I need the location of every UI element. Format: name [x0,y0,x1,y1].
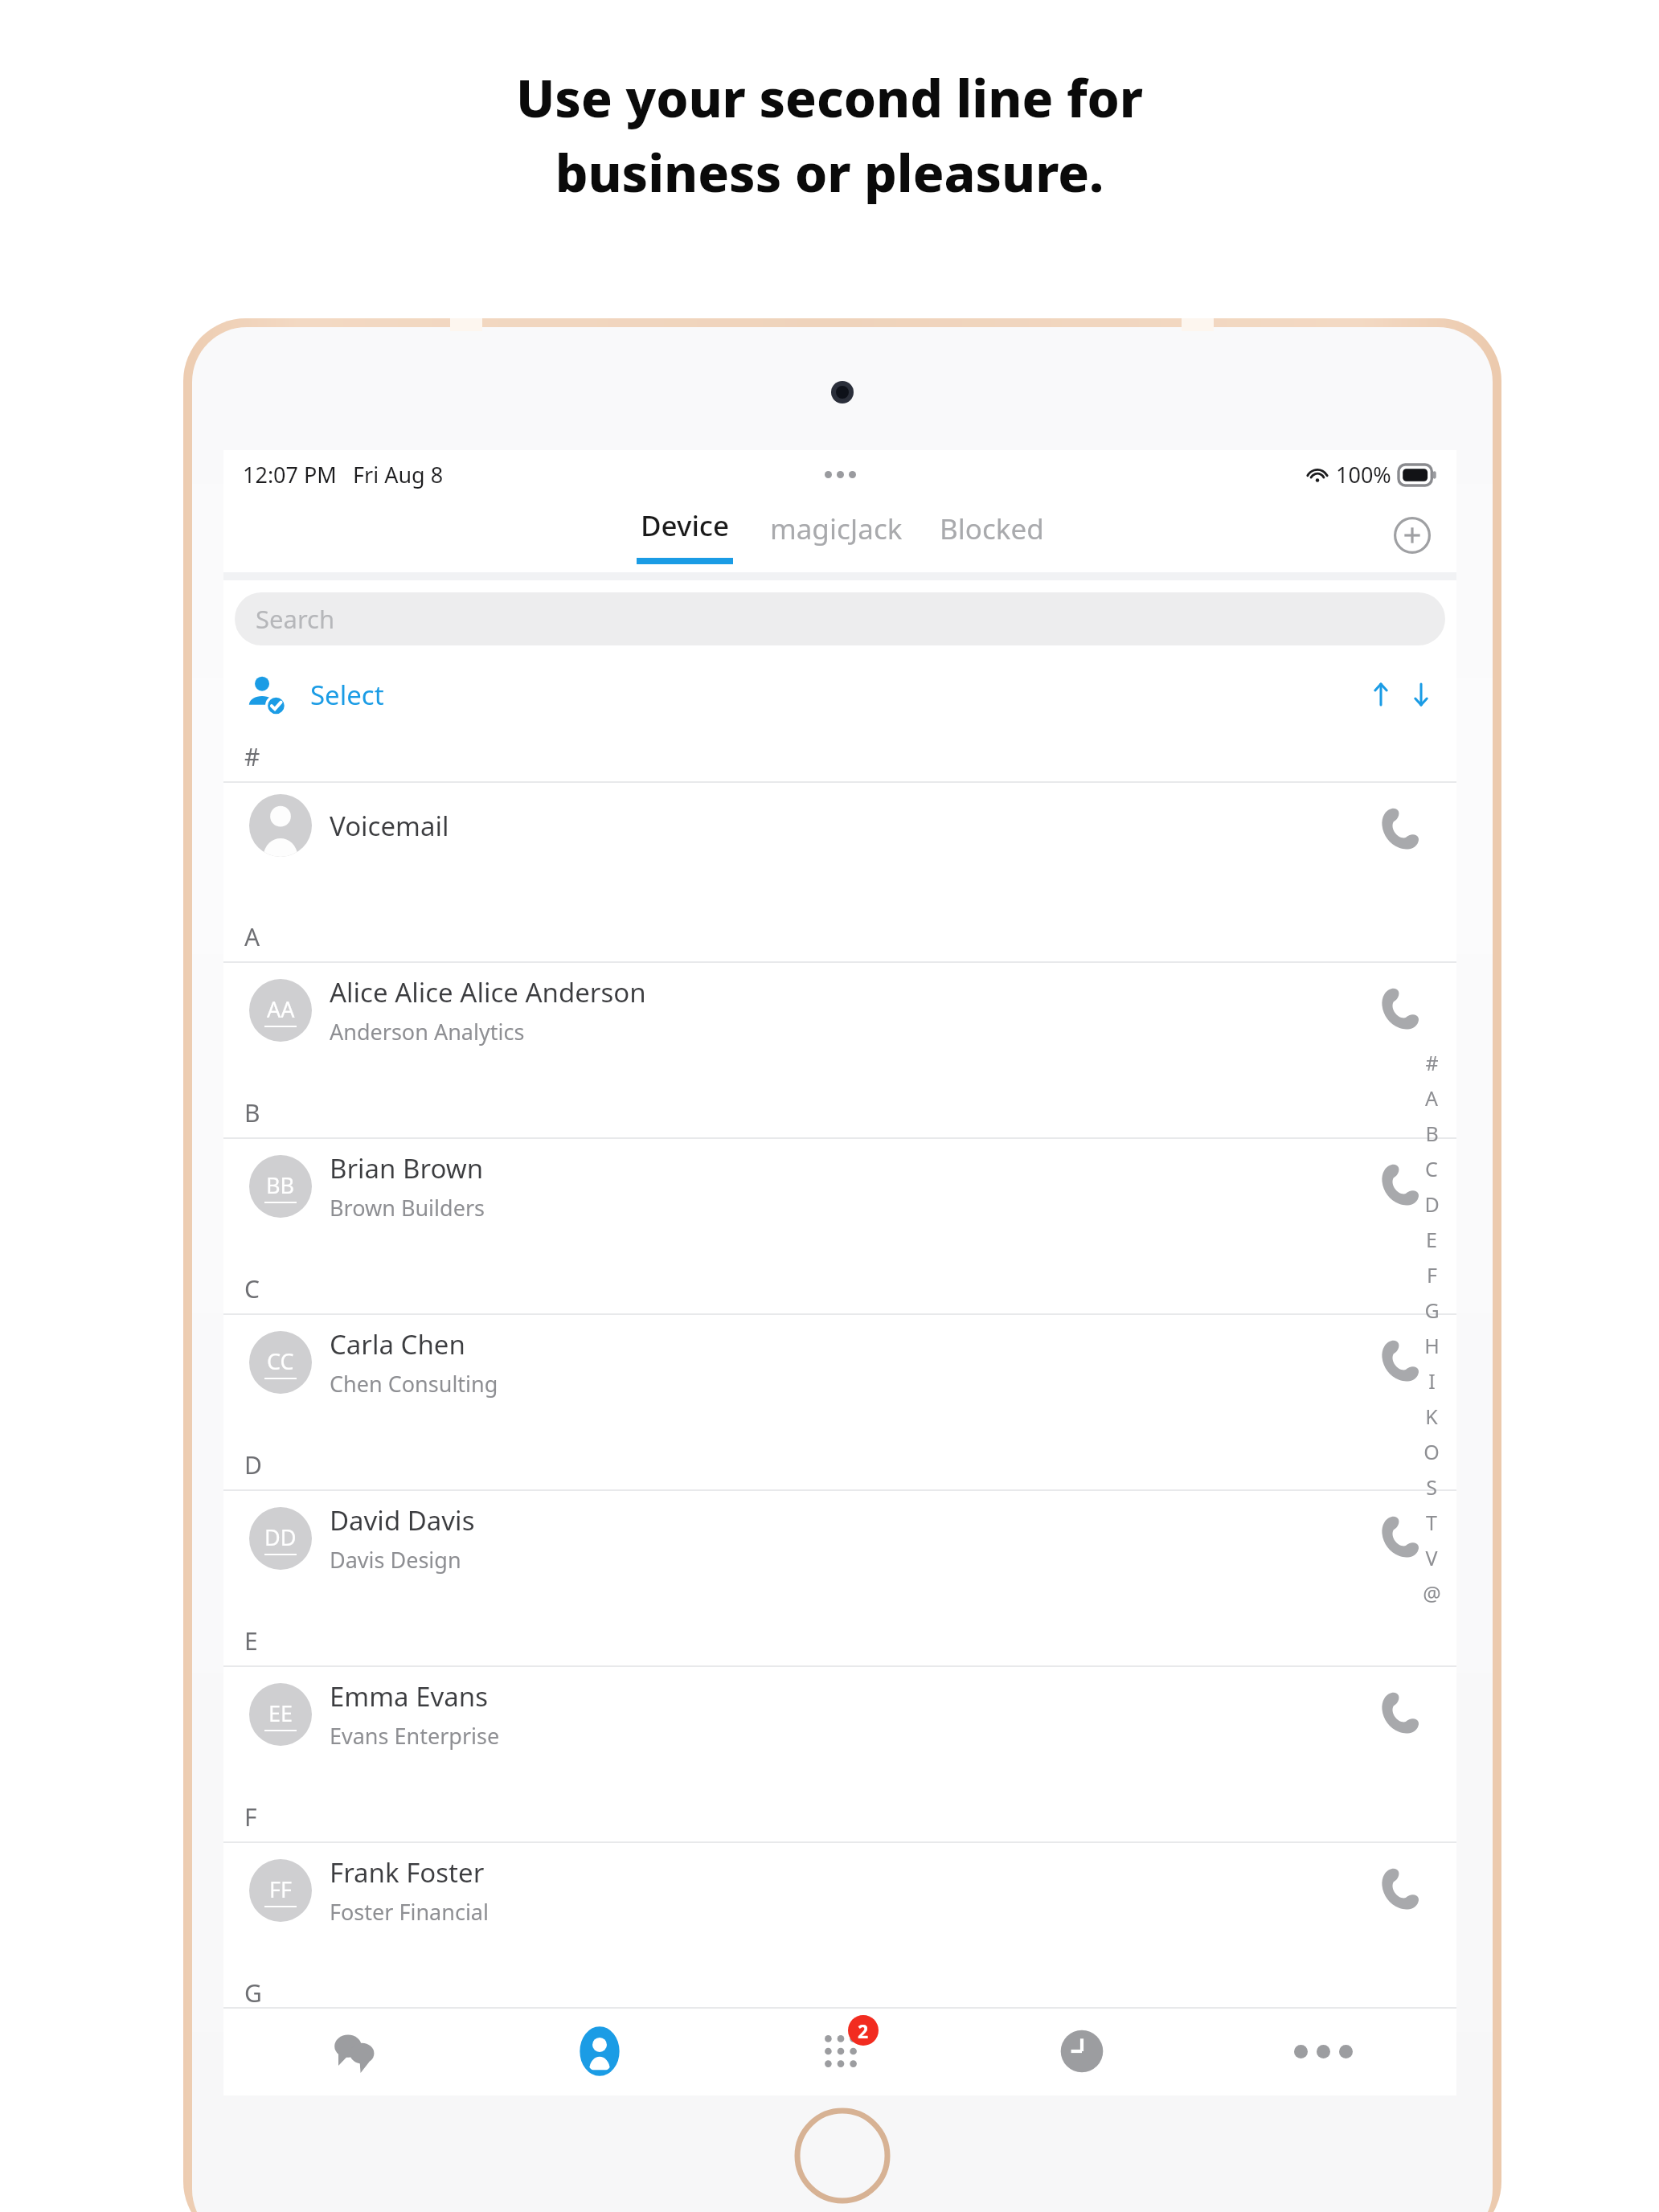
staticText: FF [269,1874,293,1904]
staticText: Frank Foster [330,1854,485,1890]
button[interactable]: DD [223,1491,1456,1616]
staticText: @ [1423,1579,1441,1607]
staticText: Alice Alice Alice Anderson [330,974,646,1010]
staticText: O [1423,1438,1440,1465]
button[interactable]: Messages [236,2007,478,2095]
staticText: D [1424,1190,1440,1218]
button[interactable]: Alphabet index [1411,1045,1452,1611]
staticText: BB [266,1170,295,1200]
button[interactable]: FF [223,1843,1456,1968]
staticText: DD [264,1522,297,1552]
staticText: G [1424,1296,1440,1324]
staticText: C [1425,1155,1438,1182]
staticText: B [1425,1120,1439,1147]
button[interactable]: Blocked [935,503,1049,567]
staticText: C [244,1272,260,1305]
staticText: K [1425,1403,1438,1430]
staticText: A [244,920,260,953]
button[interactable]: Keypad [720,2007,961,2095]
staticText: Brown Builders [330,1193,485,1223]
staticText: business or pleasure. [0,137,1659,207]
staticText: Anderson Analytics [330,1017,525,1047]
button[interactable]: Device [632,500,738,571]
staticText: Select [310,677,384,713]
staticText: # [1425,1049,1439,1076]
button[interactable]: Add contact [1386,509,1439,562]
button[interactable]: Recents [961,2007,1202,2095]
staticText: B [244,1096,260,1129]
button[interactable]: Search [235,592,1445,645]
staticText: Use your second line for [0,63,1659,133]
staticText: F [1427,1261,1437,1288]
button[interactable]: BB [223,1139,1456,1264]
staticText: Foster Financial [330,1897,489,1927]
staticText: 2 [858,2018,869,2043]
staticText: E [1426,1226,1437,1253]
staticText: T [1426,1509,1437,1536]
staticText: Voicemail [330,808,449,844]
staticText: 100% [1336,460,1391,490]
staticText: V [1425,1544,1438,1571]
staticText: CC [267,1346,294,1376]
button[interactable]: Call Voicemail [1376,804,1426,854]
staticText: magicJack [770,510,903,548]
staticText: E [244,1624,258,1657]
staticText: AA [267,994,295,1024]
button[interactable]: Voicemail [223,783,1456,911]
button[interactable]: AA [223,963,1456,1088]
staticText: Carla Chen [330,1326,465,1362]
button[interactable]: GG [223,2019,1456,2095]
button[interactable]: Call Alice Alice Alice Anderson [1376,984,1426,1034]
staticText: S [1426,1473,1437,1501]
staticText: David Davis [330,1502,475,1538]
staticText: I [1428,1367,1436,1395]
staticText: H [1424,1332,1440,1359]
staticText: George Grant [330,2030,500,2067]
staticText: Fri Aug 8 [353,460,444,490]
staticText: Emma Evans [330,1678,488,1714]
staticText: A [1425,1084,1438,1112]
staticText: EE [268,1698,293,1728]
staticText: Device [641,506,730,545]
button[interactable]: Call Carla Chen [1376,1336,1426,1386]
button[interactable]: Call Emma Evans [1376,1688,1426,1738]
button[interactable]: Select [244,671,384,718]
staticText: # [244,740,260,773]
button[interactable]: Contacts [478,2007,720,2095]
staticText: F [244,1800,257,1833]
button[interactable]: Call Brian Brown [1376,1160,1426,1210]
staticText: Search [256,602,335,636]
staticText: D [244,1448,262,1481]
button[interactable]: magicJack [765,503,907,567]
staticText: G [244,1976,262,2009]
button[interactable]: EE [223,1667,1456,1792]
button[interactable]: Call David Davis [1376,1512,1426,1562]
staticText: 12:07 PM [243,460,337,490]
staticText: Brian Brown [330,1150,484,1186]
button[interactable]: Call Frank Foster [1376,1864,1426,1914]
staticText: Chen Consulting [330,1369,498,1399]
staticText: Evans Enterprise [330,1721,500,1751]
button[interactable]: More [1202,2007,1444,2095]
staticText: Davis Design [330,1545,461,1575]
button[interactable]: Sort order [1366,680,1436,709]
button[interactable]: CC [223,1315,1456,1440]
staticText: Blocked [940,510,1044,548]
